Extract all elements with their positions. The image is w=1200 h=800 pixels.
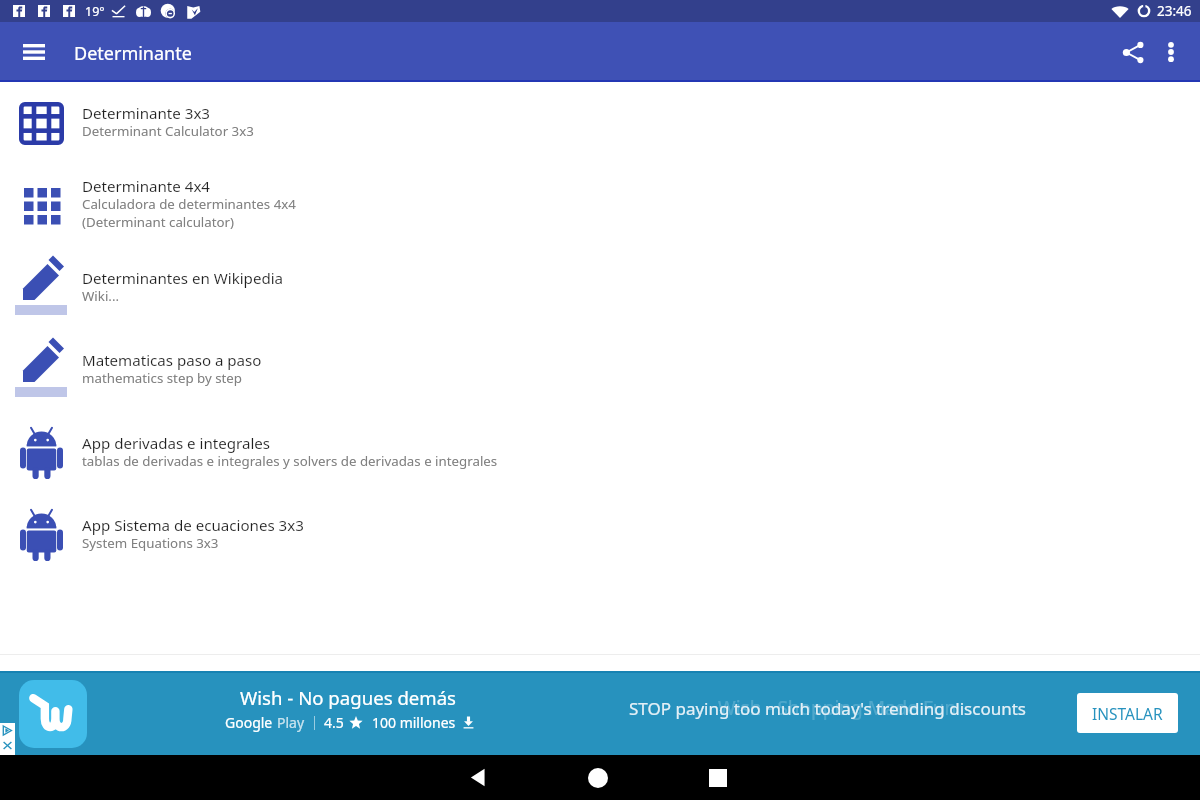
- staticText: Wish - No pagues demás: [240, 685, 457, 710]
- button[interactable]: Share: [1110, 29, 1156, 75]
- staticText: 4.5: [324, 713, 344, 732]
- staticText: System Equations 3x3: [82, 534, 219, 552]
- button[interactable]: App Sistema de ecuaciones 3x3: [0, 499, 1200, 559]
- staticText: App derivadas e integrales: [82, 433, 271, 454]
- staticText: Play: [277, 713, 305, 732]
- button[interactable]: Home: [574, 755, 622, 800]
- button[interactable]: Determinante 3x3: [0, 87, 1200, 147]
- staticText: Determinante 3x3: [82, 103, 210, 124]
- staticText: 19°: [85, 3, 105, 20]
- button[interactable]: Determinantes en Wikipedia: [0, 252, 1200, 312]
- button[interactable]: Determinante 4x4: [0, 160, 1200, 240]
- button[interactable]: More options: [1148, 29, 1194, 75]
- staticText: Determinante 4x4: [82, 176, 210, 197]
- staticText: tablas de derivadas e integrales y solve…: [82, 452, 498, 470]
- staticText: (Determinant calculator): [82, 213, 235, 231]
- staticText: Wish - Shopping Made Fun: [718, 695, 957, 721]
- button[interactable]: App derivadas e integrales: [0, 417, 1200, 477]
- staticText: App Sistema de ecuaciones 3x3: [82, 515, 304, 536]
- staticText: 23:46: [1157, 2, 1192, 20]
- staticText: 100 millones: [372, 713, 456, 732]
- staticText: Calculadora de determinantes 4x4: [82, 195, 296, 213]
- button[interactable]: Recent apps: [694, 755, 742, 800]
- staticText: Determinantes en Wikipedia: [82, 268, 284, 289]
- button[interactable]: Matematicas paso a paso: [0, 334, 1200, 394]
- button[interactable]: INSTALAR: [1077, 693, 1178, 733]
- staticText: STOP paying too much today's trending di…: [629, 697, 1026, 720]
- staticText: INSTALAR: [1092, 703, 1163, 724]
- button[interactable]: Back: [454, 755, 502, 800]
- staticText: Matematicas paso a paso: [82, 350, 262, 371]
- staticText: mathematics step by step: [82, 369, 243, 387]
- staticText: Google: [225, 713, 273, 732]
- staticText: Determinante: [74, 41, 192, 66]
- button[interactable]: Open navigation menu: [12, 30, 56, 74]
- staticText: Wiki...: [82, 287, 120, 305]
- staticText: Determinant Calculator 3x3: [82, 122, 254, 140]
